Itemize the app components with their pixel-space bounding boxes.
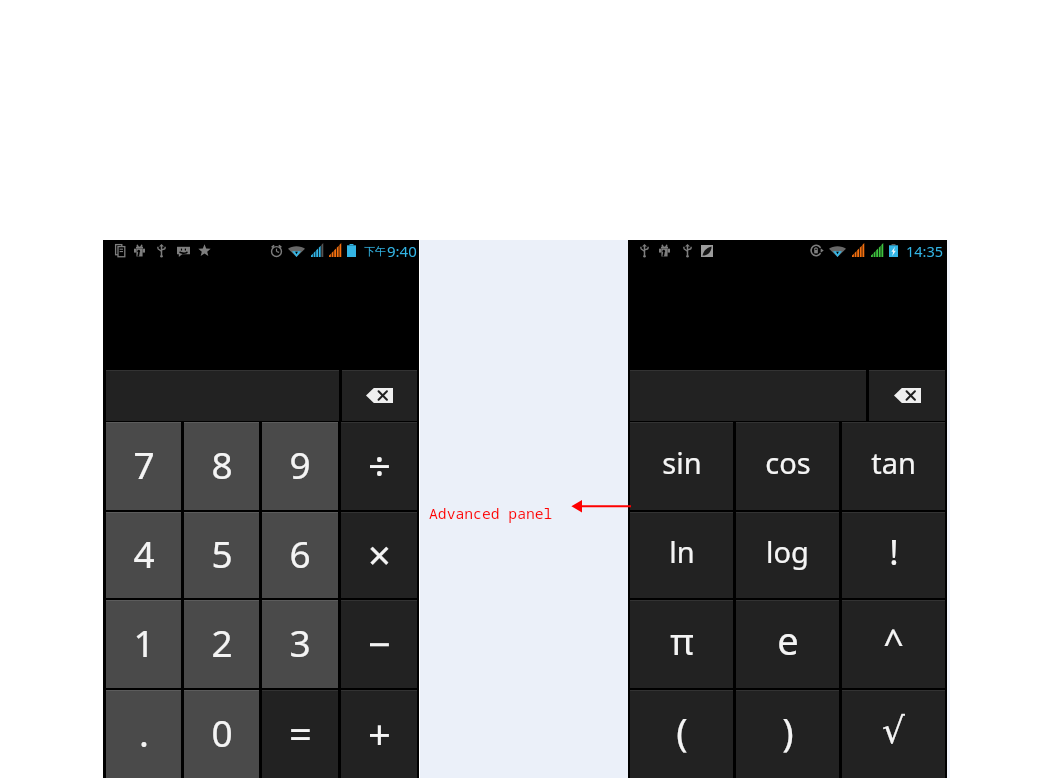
button[interactable]: =	[262, 690, 338, 778]
button[interactable]: 5	[184, 512, 259, 598]
staticText: 7	[133, 439, 155, 489]
button[interactable]: π	[630, 600, 733, 688]
staticText: .	[139, 707, 149, 757]
button[interactable]: ÷	[341, 422, 417, 510]
button[interactable]: tan	[842, 422, 945, 510]
staticText: )	[782, 705, 794, 757]
staticText: √	[882, 710, 905, 752]
staticText: ln	[669, 532, 695, 571]
staticText: log	[766, 532, 809, 571]
staticText: 5	[211, 528, 233, 578]
staticText: e	[777, 614, 799, 666]
button[interactable]: √	[842, 690, 945, 778]
button[interactable]: (	[630, 690, 733, 778]
staticText: 2	[211, 617, 233, 667]
button[interactable]: e	[736, 600, 839, 688]
button[interactable]: +	[341, 690, 417, 778]
button[interactable]: −	[341, 600, 417, 688]
staticText: 0	[211, 707, 233, 757]
button[interactable]: !	[842, 512, 945, 598]
staticText: 9	[289, 439, 311, 489]
staticText: −	[368, 616, 391, 670]
button[interactable]: 7	[106, 422, 181, 510]
button[interactable]: sin	[630, 422, 733, 510]
button[interactable]: ^	[842, 600, 945, 688]
button[interactable]: 9	[262, 422, 338, 510]
staticText: sin	[662, 443, 702, 482]
button[interactable]: 6	[262, 512, 338, 598]
button[interactable]: ln	[630, 512, 733, 598]
staticText: 4	[133, 528, 155, 578]
staticText: 14:35	[906, 241, 944, 261]
staticText: +	[368, 706, 391, 760]
staticText: =	[289, 706, 312, 760]
staticText: ÷	[368, 438, 391, 492]
button[interactable]: 2	[184, 600, 259, 688]
button[interactable]: )	[736, 690, 839, 778]
staticText: 9:40	[387, 241, 417, 261]
button[interactable]: 8	[184, 422, 259, 510]
staticText: 下午	[364, 244, 386, 258]
button[interactable]: .	[106, 690, 181, 778]
staticText: 8	[211, 439, 233, 489]
staticText: (	[676, 705, 688, 757]
button[interactable]: cos	[736, 422, 839, 510]
staticText: 1	[133, 617, 155, 667]
staticText: tan	[871, 443, 916, 482]
button[interactable]: 0	[184, 690, 259, 778]
button[interactable]: 3	[262, 600, 338, 688]
staticText: 3	[289, 617, 311, 667]
staticText: ×	[368, 527, 391, 581]
button[interactable]: Backspace	[342, 370, 417, 421]
staticText: π	[670, 617, 694, 666]
button[interactable]: 4	[106, 512, 181, 598]
staticText: ^	[883, 618, 904, 667]
button[interactable]: Backspace	[869, 370, 945, 421]
staticText: 6	[289, 528, 311, 578]
staticText: cos	[765, 443, 811, 482]
button[interactable]: ×	[341, 512, 417, 598]
staticText: !	[889, 528, 899, 576]
button[interactable]: 1	[106, 600, 181, 688]
button[interactable]: log	[736, 512, 839, 598]
staticText: Advanced panel	[429, 503, 553, 523]
